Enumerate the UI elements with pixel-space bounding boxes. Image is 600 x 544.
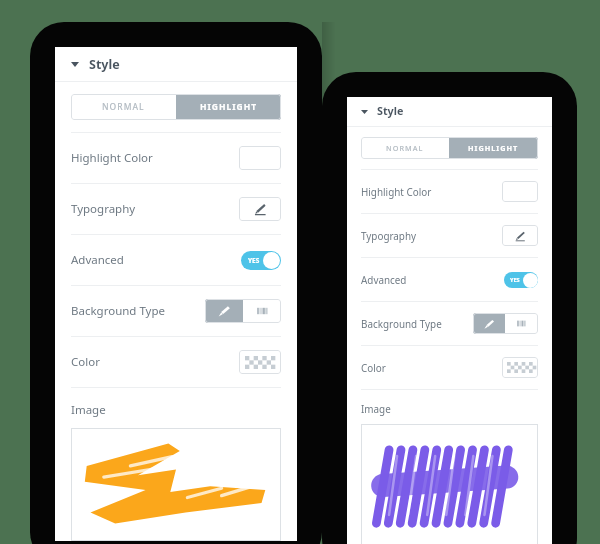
staticText: Highlight Color (361, 185, 432, 198)
button[interactable]: Gradient background (243, 299, 281, 323)
staticText: HIGHLIGHT (468, 143, 519, 153)
staticText: Typography (361, 229, 417, 242)
staticText: Style (377, 104, 404, 119)
staticText: Style (89, 56, 120, 73)
button[interactable]: Advanced on (241, 251, 281, 270)
staticText: YES (510, 276, 520, 284)
staticText: Background Type (71, 303, 166, 319)
button[interactable]: Style (71, 47, 281, 81)
button[interactable]: HIGHLIGHT (449, 137, 538, 159)
button[interactable]: Gradient background (505, 313, 538, 334)
staticText: NORMAL (386, 143, 424, 153)
button[interactable]: Classic background (205, 299, 243, 323)
staticText: HIGHLIGHT (200, 101, 258, 113)
staticText: Image (71, 402, 106, 418)
button[interactable]: Pick color (239, 350, 281, 374)
staticText: Typography (71, 201, 136, 217)
staticText: Advanced (71, 252, 124, 268)
button[interactable]: Edit typography (502, 225, 538, 246)
button[interactable]: Style (361, 97, 538, 126)
button[interactable]: Pick highlight color (239, 146, 281, 170)
button[interactable]: Edit typography (239, 197, 281, 221)
staticText: Advanced (361, 273, 407, 286)
button[interactable]: NORMAL (71, 94, 176, 120)
button[interactable]: HIGHLIGHT (176, 94, 281, 120)
staticText: Background Type (361, 317, 442, 330)
staticText: Color (361, 361, 386, 374)
button[interactable]: Classic background (473, 313, 505, 334)
button[interactable]: NORMAL (361, 137, 449, 159)
staticText: YES (248, 256, 260, 265)
button[interactable]: Image preview (361, 424, 538, 544)
button[interactable]: Advanced on (504, 272, 538, 288)
staticText: Highlight Color (71, 150, 153, 166)
staticText: Image (361, 402, 391, 415)
button[interactable]: Pick color (502, 357, 538, 378)
button[interactable]: Pick highlight color (502, 181, 538, 202)
staticText: NORMAL (102, 101, 145, 113)
staticText: Color (71, 354, 100, 370)
button[interactable]: Image preview (71, 428, 281, 541)
